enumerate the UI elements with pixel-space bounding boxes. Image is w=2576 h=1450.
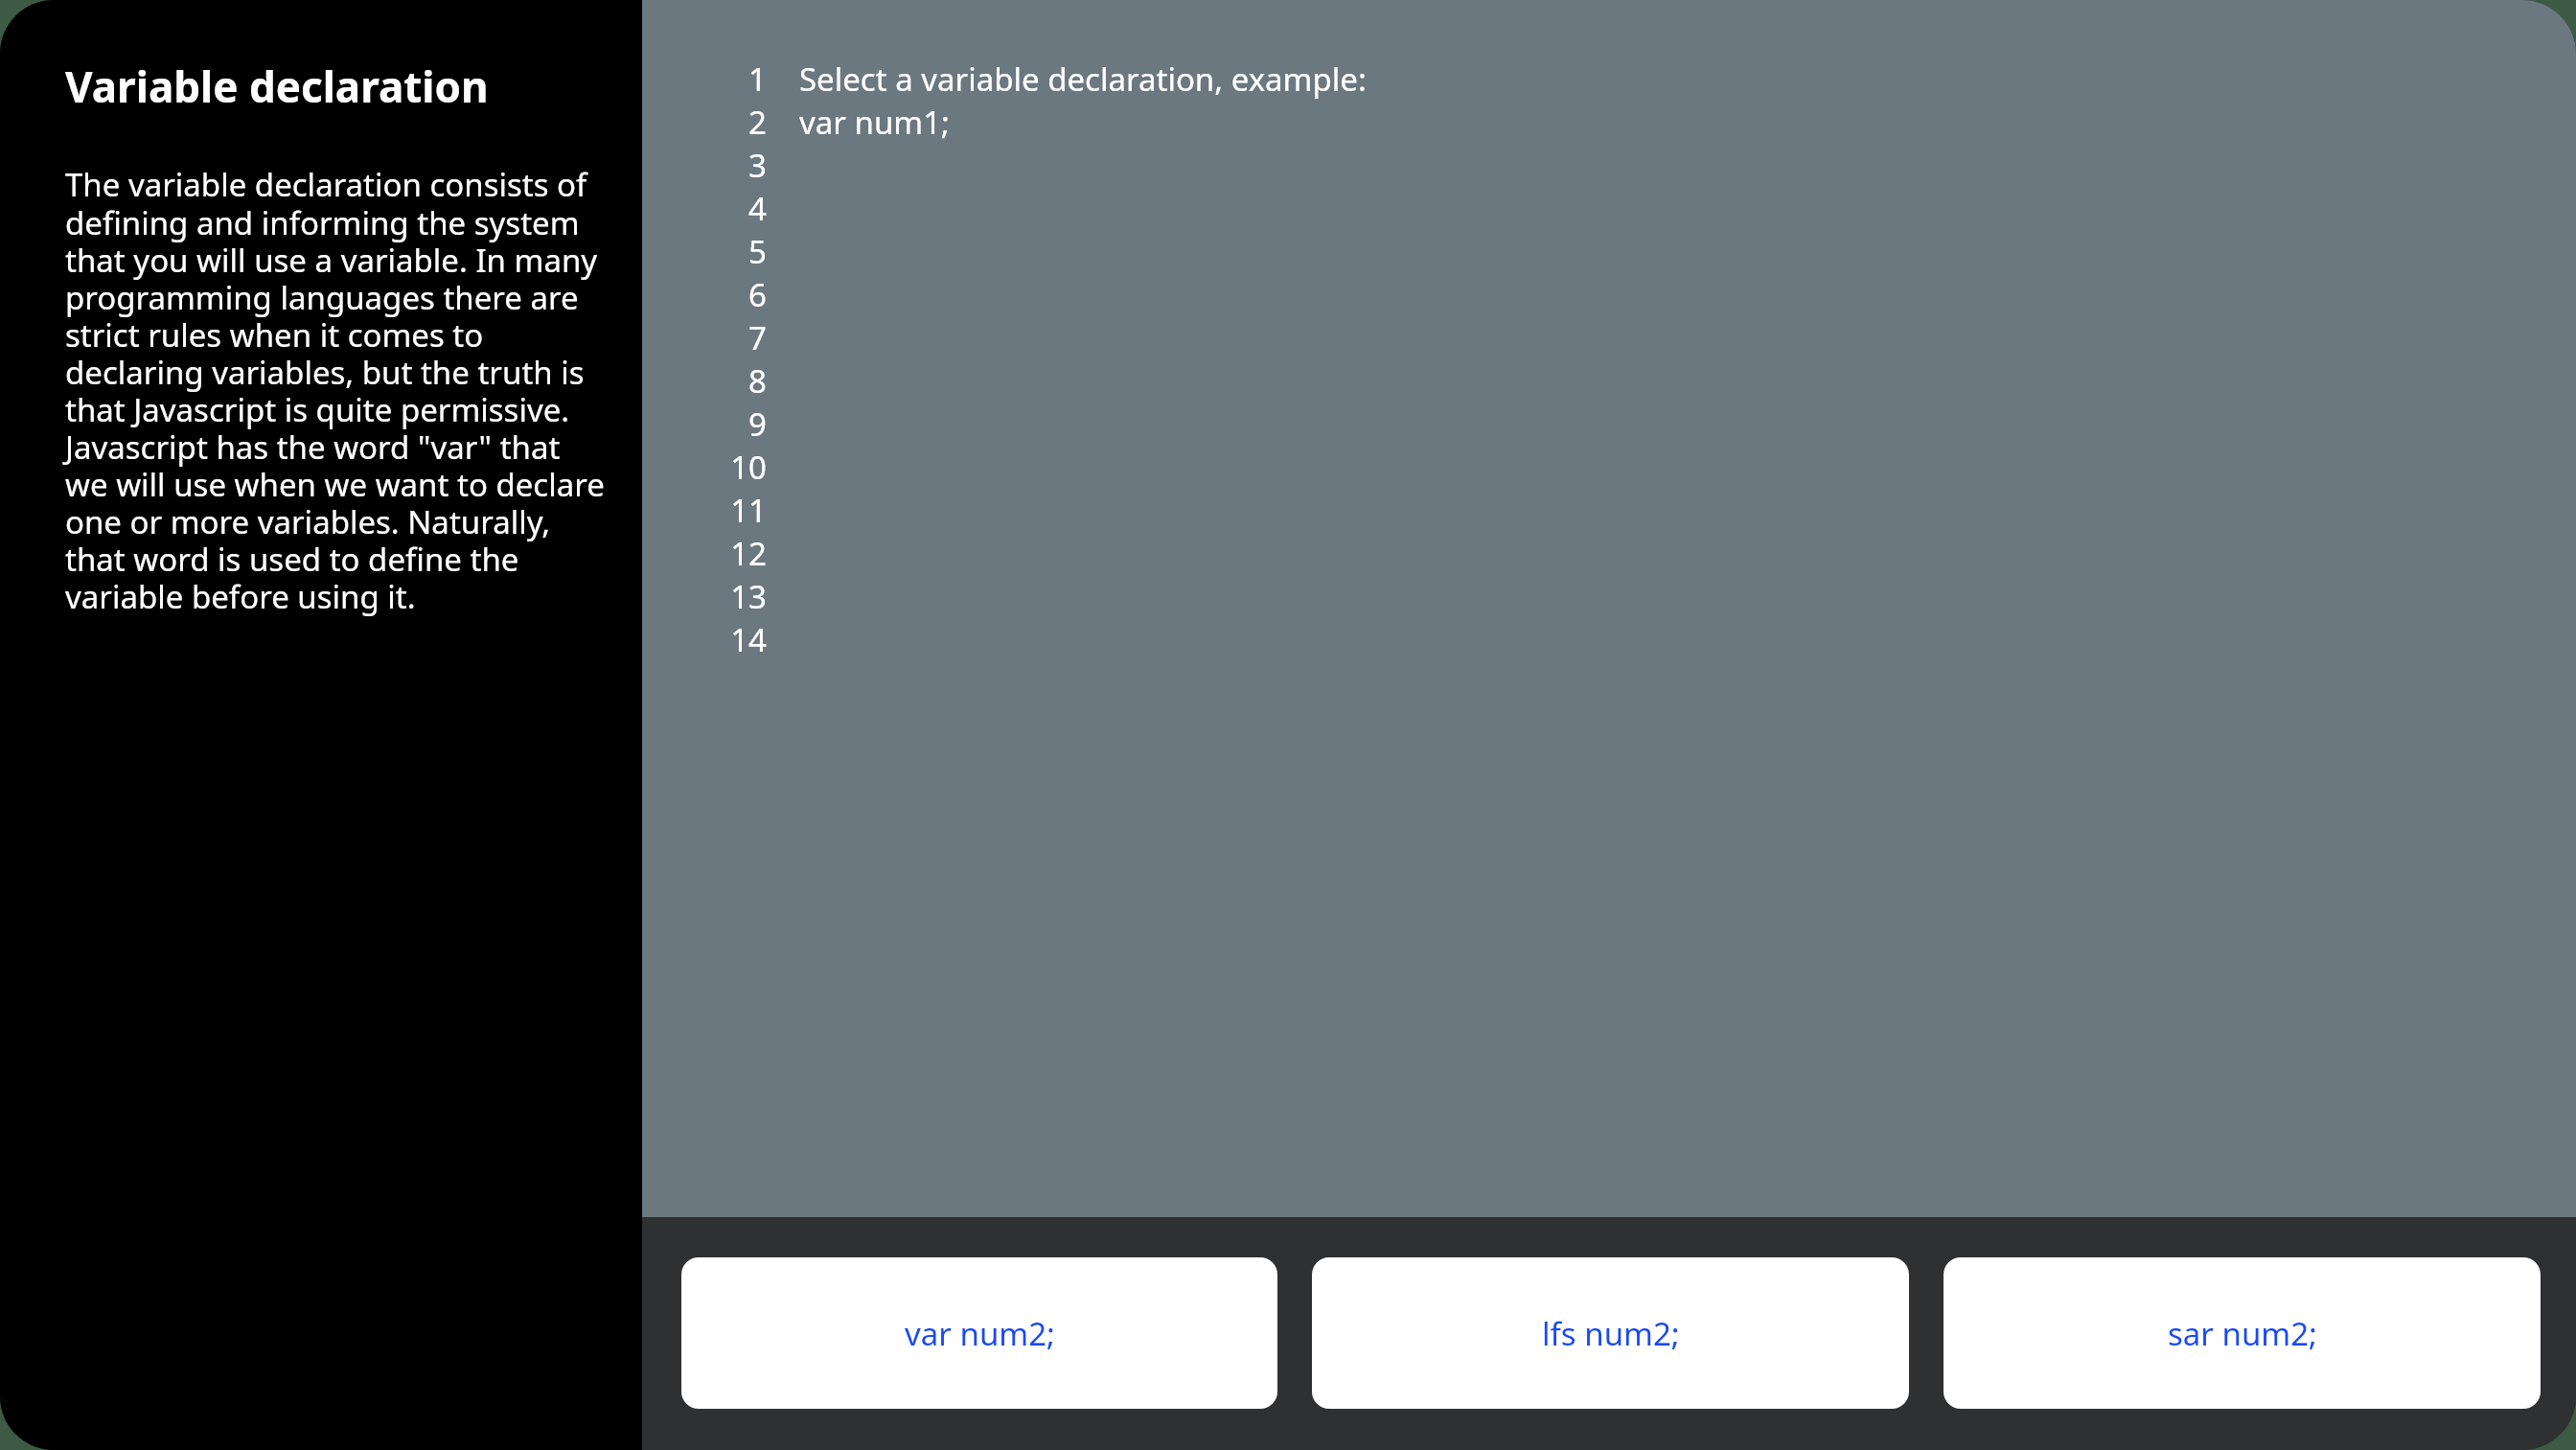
staticText: 10 [730, 446, 767, 489]
staticText: lfs num2; [1542, 1312, 1680, 1355]
button[interactable]: sar num2; [1943, 1257, 2541, 1409]
button[interactable]: lfs num2; [1312, 1257, 1909, 1409]
staticText: 12 [730, 532, 767, 575]
staticText: var num2; [905, 1312, 1055, 1355]
staticText: 1 [748, 58, 767, 101]
staticText: sar num2; [2168, 1312, 2317, 1355]
staticText: Select a variable declaration, example: [799, 58, 1367, 101]
staticText: 9 [748, 403, 767, 446]
staticText: 5 [748, 230, 767, 273]
staticText: The variable declaration consists of def… [65, 163, 608, 617]
staticText: 13 [730, 575, 767, 618]
button[interactable]: var num2; [681, 1257, 1277, 1409]
staticText: 2 [748, 101, 767, 144]
staticText: 11 [730, 489, 767, 532]
staticText: 14 [730, 618, 767, 661]
staticText: 7 [748, 316, 767, 359]
staticText: 4 [748, 187, 767, 230]
staticText: 3 [748, 144, 767, 187]
staticText: 8 [748, 359, 767, 403]
staticText: Variable declaration [65, 58, 489, 115]
staticText: var num1; [799, 101, 950, 144]
staticText: 6 [748, 273, 767, 316]
